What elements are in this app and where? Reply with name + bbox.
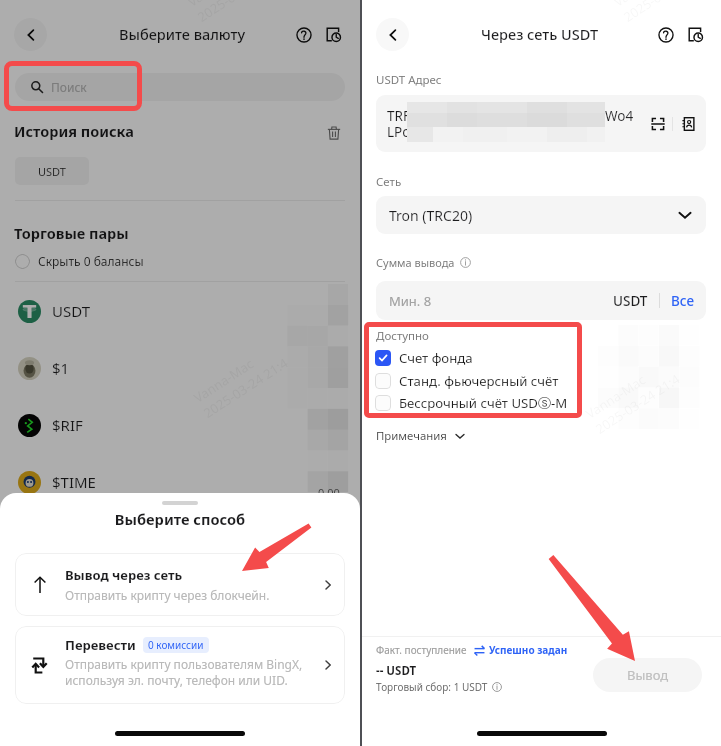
button[interactable]: History <box>683 22 708 47</box>
button[interactable]: Tron (TRC20) <box>376 196 706 234</box>
button[interactable]: Счет фонда <box>375 349 473 367</box>
staticText: Счет фонда <box>399 349 473 367</box>
button[interactable]: Поиск <box>15 73 345 101</box>
staticText: Доступно <box>376 328 429 344</box>
staticText: $TIME <box>52 472 96 492</box>
staticText: Бессрочный счёт USDⓢ-M <box>399 394 568 412</box>
staticText: Факт. поступление <box>376 643 467 657</box>
button[interactable]: Address book <box>674 110 702 138</box>
staticText: Примечания <box>376 428 447 444</box>
staticText: Мин. 8 <box>389 292 432 310</box>
staticText: Торговые пары <box>14 223 129 243</box>
button[interactable]: Бессрочный счёт USDⓢ-M <box>375 394 568 412</box>
button[interactable]: Все <box>671 292 695 310</box>
staticText: Сумма вывода <box>376 255 455 270</box>
staticText: USDT <box>613 292 648 310</box>
button[interactable]: Вывод через сеть <box>15 553 345 616</box>
staticText: Tron (TRC20) <box>389 206 473 225</box>
button[interactable]: $TIME <box>18 454 360 510</box>
staticText: LPc <box>387 123 409 141</box>
staticText: $1 <box>52 358 70 378</box>
button[interactable]: Scan QR <box>644 110 672 138</box>
staticText: Поиск <box>51 79 87 95</box>
button[interactable]: Скрыть 0 балансы <box>15 252 144 270</box>
staticText: Через сеть USDT <box>481 24 599 44</box>
button[interactable]: Help <box>653 22 678 47</box>
staticText: -- USDT <box>376 663 417 679</box>
button[interactable]: Back <box>376 18 409 51</box>
button[interactable]: Clear history <box>324 123 344 143</box>
button[interactable]: USDT <box>15 157 89 185</box>
staticText: Станд. фьючерсный счёт <box>399 372 559 390</box>
button[interactable]: $1 <box>18 340 360 396</box>
button[interactable]: Help <box>291 22 316 47</box>
staticText: Выберите валюту <box>119 24 246 44</box>
staticText: USDT Адрес <box>376 72 442 88</box>
staticText: используя эл. почту, телефон или UID. <box>65 672 288 688</box>
staticText: Вывод через сеть <box>65 566 183 584</box>
staticText: Перевести <box>65 636 136 654</box>
staticText: Торговый сбор: 1 USDT <box>376 680 488 694</box>
staticText: USDT <box>38 164 66 179</box>
staticText: 0 комиссии <box>148 638 204 652</box>
staticText: Вывод <box>627 666 669 684</box>
staticText: Скрыть 0 балансы <box>38 253 144 269</box>
staticText: Успешно задан <box>489 643 568 657</box>
button[interactable]: $RIF <box>18 397 360 453</box>
button[interactable]: Вывод <box>593 658 702 692</box>
staticText: TRF <box>387 107 410 125</box>
staticText: Wo4 <box>605 107 634 125</box>
staticText: Сеть <box>376 174 402 190</box>
staticText: Выберите способ <box>0 509 360 529</box>
staticText: 0.00 <box>318 485 340 500</box>
staticText: $RIF <box>52 415 83 435</box>
button[interactable]: Back <box>14 18 47 51</box>
button[interactable]: Примечания <box>376 428 465 444</box>
button[interactable]: Перевести <box>15 626 345 704</box>
button[interactable]: USDT <box>18 283 360 339</box>
staticText: История поиска <box>14 121 134 141</box>
staticText: Отправить крипту через блокчейн. <box>65 587 270 603</box>
staticText: Все <box>671 292 695 310</box>
button[interactable]: History <box>321 22 346 47</box>
staticText: USDT <box>52 301 91 321</box>
button[interactable]: Станд. фьючерсный счёт <box>375 372 559 390</box>
staticText: Отправить крипту пользователям BingX, <box>65 656 303 672</box>
